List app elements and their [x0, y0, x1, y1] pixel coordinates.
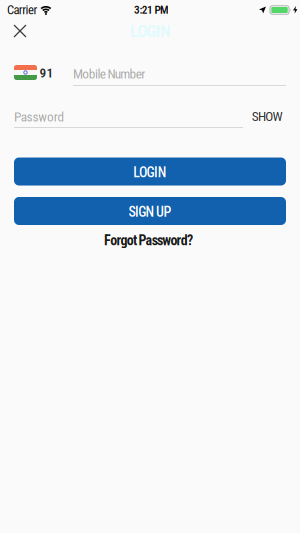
staticText: LOGIN	[133, 164, 167, 181]
staticText: SHOW	[252, 109, 282, 124]
button[interactable]: SIGN UP	[14, 197, 286, 225]
staticText: Password	[14, 109, 65, 125]
staticText: Forgot Password?	[104, 232, 193, 249]
button[interactable]: Forgot Password?	[104, 232, 193, 249]
staticText: 91	[39, 65, 53, 81]
button[interactable]: Close	[8, 19, 32, 43]
staticText: SIGN UP	[129, 204, 171, 220]
button[interactable]: LOGIN	[14, 157, 286, 185]
staticText: Carrier	[7, 3, 37, 17]
staticText: 3:21 PM	[134, 3, 169, 17]
button[interactable]: SHOW	[252, 109, 282, 124]
staticText: LOGIN	[130, 21, 171, 41]
staticText: Mobile Number	[73, 66, 145, 82]
